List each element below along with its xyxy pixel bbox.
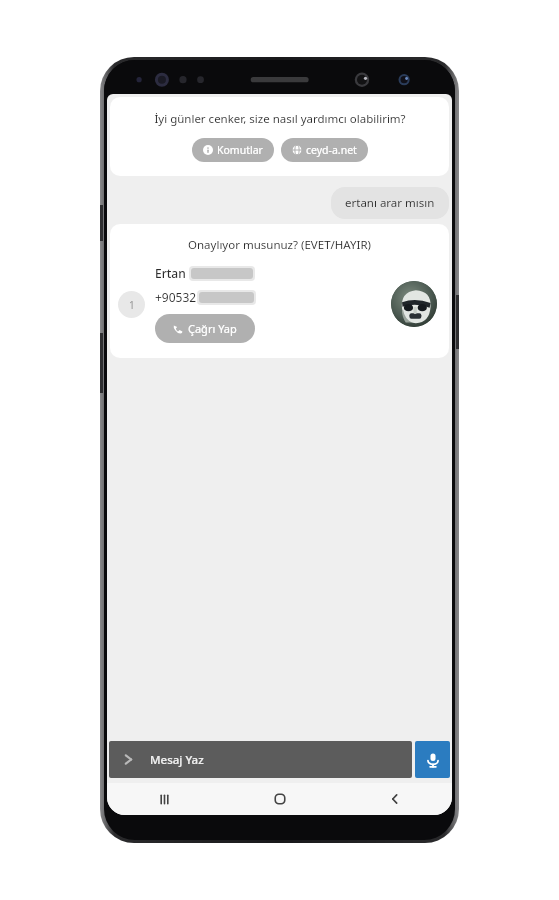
button[interactable]: Çağrı Yap — [155, 314, 255, 343]
button[interactable]: Komutlar — [192, 138, 274, 162]
button[interactable]: Recent apps — [107, 783, 222, 815]
staticText: 1 — [129, 298, 135, 312]
staticText: Çağrı Yap — [188, 321, 237, 336]
staticText: Ertan — [155, 265, 186, 281]
staticText: ceyd-a.net — [306, 143, 357, 157]
staticText: Komutlar — [217, 143, 263, 157]
staticText: +90532 — [155, 289, 197, 305]
button[interactable]: ceyd-a.net — [281, 138, 368, 162]
button[interactable]: Contact avatar — [391, 281, 437, 327]
staticText: İyi günler cenker, size nasıl yardımcı o… — [154, 111, 406, 127]
staticText: Onaylıyor musunuz? (EVET/HAYIR) — [110, 237, 449, 253]
button[interactable]: İyi günler cenker, size nasıl yardımcı o… — [110, 97, 449, 176]
button[interactable]: Home — [222, 783, 337, 815]
staticText: ertanı arar mısın — [345, 195, 435, 211]
button[interactable]: ertanı arar mısın — [331, 187, 449, 219]
button[interactable]: Onaylıyor musunuz? (EVET/HAYIR) — [110, 224, 449, 358]
staticText: Mesaj Yaz — [150, 752, 204, 768]
button[interactable]: Mesaj Yaz — [109, 741, 412, 778]
button[interactable]: Back — [337, 783, 452, 815]
button[interactable]: Voice input — [415, 741, 450, 778]
